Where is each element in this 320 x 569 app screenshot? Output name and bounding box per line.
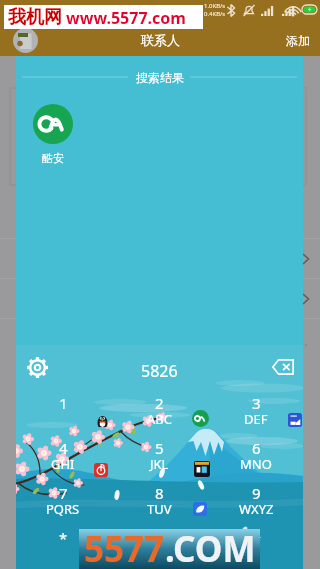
button[interactable]: 2 — [115, 393, 203, 438]
button[interactable]: Settings — [21, 351, 53, 383]
staticText: 2 — [155, 393, 164, 413]
button[interactable]: * — [19, 528, 107, 569]
staticText: TUV — [147, 500, 172, 518]
staticText: PQRS — [46, 500, 80, 518]
staticText: 联系人 — [141, 32, 180, 48]
staticText: 5826 — [141, 360, 178, 382]
button[interactable]: 0 — [115, 528, 203, 569]
staticText: .COM — [165, 525, 256, 565]
button[interactable] — [96, 415, 109, 428]
button[interactable] — [193, 502, 207, 516]
button[interactable]: # — [212, 528, 300, 569]
staticText: DEF — [244, 410, 268, 428]
button[interactable] — [288, 413, 302, 427]
staticText: 0.4KB/s — [204, 10, 226, 18]
staticText: WXYZ — [239, 500, 274, 518]
staticText: * — [59, 528, 68, 548]
staticText: 7 — [59, 483, 68, 503]
button[interactable]: 7 — [19, 483, 107, 528]
staticText: # — [251, 528, 261, 548]
button[interactable] — [194, 461, 210, 477]
button[interactable] — [94, 463, 108, 477]
button[interactable]: 4 — [19, 438, 107, 483]
staticText: 6 — [252, 438, 261, 458]
staticText: ABC — [147, 410, 172, 428]
button[interactable] — [192, 410, 209, 427]
staticText: 3 — [252, 393, 261, 413]
staticText: 酷安 — [42, 151, 64, 165]
button[interactable]: Profile — [13, 28, 38, 53]
staticText: 9 — [252, 483, 261, 503]
staticText: + — [155, 545, 163, 563]
staticText: 我机网 — [8, 6, 62, 29]
staticText: 1 — [59, 393, 68, 413]
staticText: 0 — [155, 528, 164, 548]
staticText: GHI — [51, 455, 75, 473]
button[interactable]: 酷安 — [13, 104, 93, 165]
staticText: 1.0KB/s — [204, 2, 226, 10]
staticText: JKL — [150, 455, 169, 473]
button[interactable]: 1 — [19, 393, 107, 438]
button[interactable]: 5 — [115, 438, 203, 483]
button[interactable]: 9 — [212, 483, 300, 528]
staticText: www.5577.com — [66, 7, 186, 29]
staticText: 8 — [155, 483, 164, 503]
staticText: MNO — [240, 455, 272, 473]
staticText: 5 — [155, 438, 164, 458]
button[interactable]: 8 — [115, 483, 203, 528]
button[interactable]: Backspace — [267, 351, 299, 383]
staticText: 5577 — [84, 525, 165, 565]
button[interactable]: 添加 — [276, 28, 320, 53]
staticText: 搜索结果 — [136, 70, 184, 85]
button[interactable]: 6 — [212, 438, 300, 483]
staticText: 添加 — [286, 33, 310, 48]
staticText: 4 — [59, 438, 68, 458]
button[interactable]: 3 — [212, 393, 300, 438]
